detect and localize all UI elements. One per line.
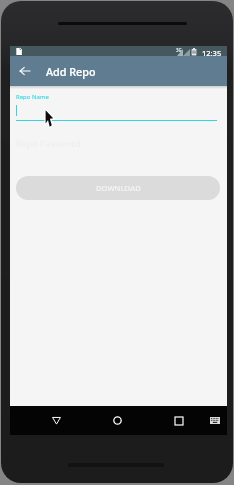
- staticText: DOWNLOAD: [96, 183, 141, 193]
- button[interactable]: Recent apps: [158, 406, 199, 435]
- staticText: 3G: [176, 47, 182, 53]
- button[interactable]: Switch keyboard: [204, 406, 226, 435]
- button[interactable]: Navigate up: [10, 56, 227, 86]
- button[interactable]: DOWNLOAD: [16, 176, 220, 200]
- staticText: Add Repo: [46, 64, 96, 79]
- staticText: 12:35: [202, 48, 222, 58]
- button[interactable]: Back: [36, 406, 76, 435]
- staticText: Repo Name: [16, 93, 49, 101]
- button[interactable]: Home: [97, 406, 138, 435]
- button[interactable]: Navigate up: [13, 56, 37, 80]
